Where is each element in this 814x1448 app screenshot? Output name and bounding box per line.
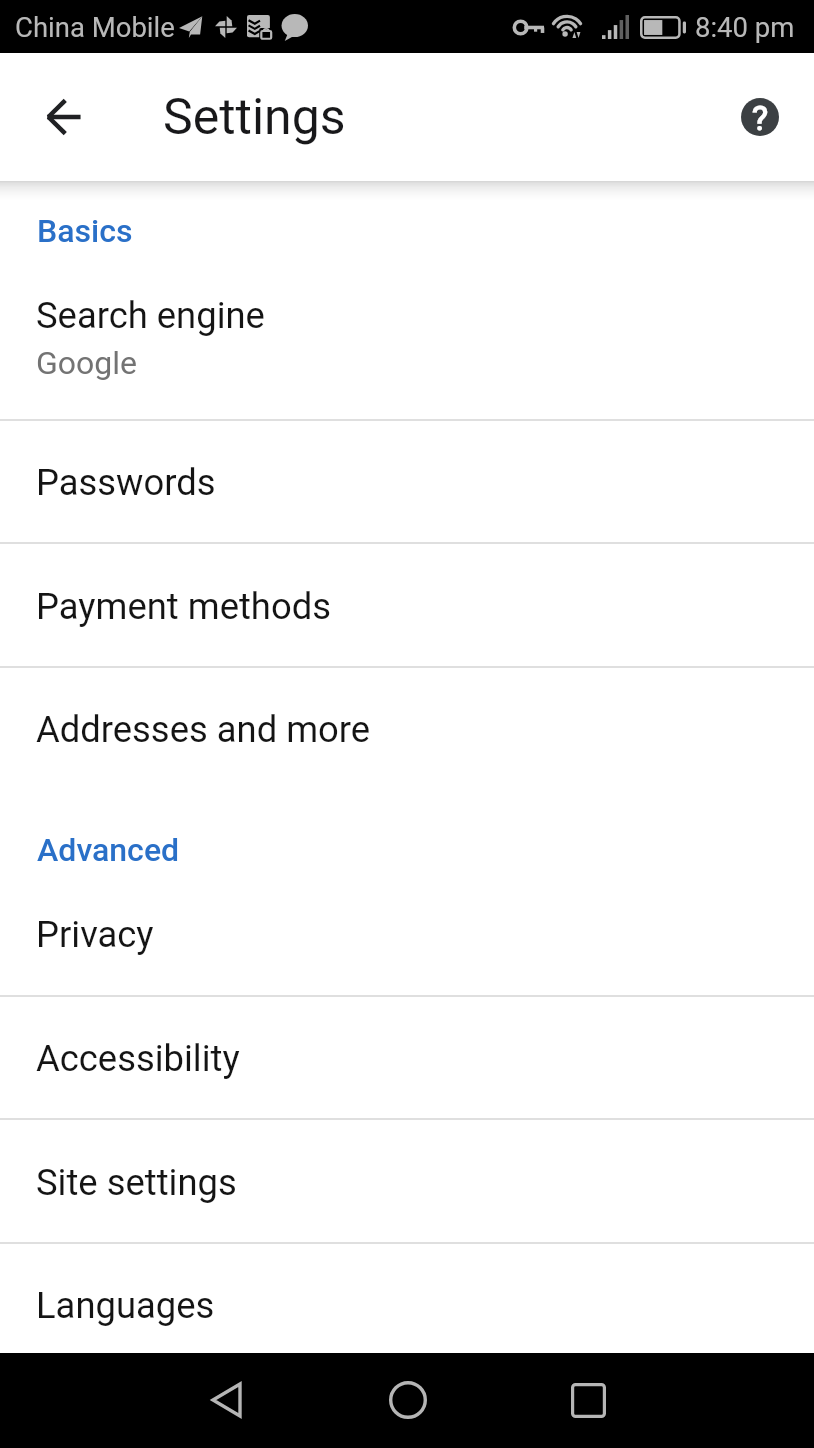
button[interactable]: Privacy — [0, 873, 814, 996]
staticText: Google — [36, 344, 138, 382]
staticText: Basics — [37, 212, 133, 250]
staticText: China Mobile — [15, 11, 175, 43]
button[interactable]: Passwords — [0, 420, 814, 543]
button[interactable]: Languages — [0, 1243, 814, 1353]
staticText: Settings — [163, 88, 346, 147]
staticText: Payment methods — [36, 585, 331, 628]
staticText: Site settings — [36, 1161, 237, 1204]
button[interactable]: Site settings — [0, 1119, 814, 1243]
button[interactable]: Accessibility — [0, 996, 814, 1119]
staticText: Advanced — [37, 831, 180, 869]
button[interactable]: Back — [190, 1364, 262, 1436]
staticText: ? — [752, 98, 769, 136]
staticText: Accessibility — [36, 1037, 240, 1080]
button[interactable]: Search engine — [0, 254, 814, 420]
button[interactable]: Payment methods — [0, 543, 814, 667]
staticText: Search engine — [36, 294, 265, 337]
button[interactable]: Addresses and more — [0, 667, 814, 790]
button[interactable]: Home — [372, 1364, 444, 1436]
staticText: Addresses and more — [36, 708, 371, 751]
button[interactable]: Back — [22, 76, 104, 158]
button[interactable]: Help — [724, 81, 796, 153]
staticText: Privacy — [36, 913, 154, 956]
staticText: Passwords — [36, 461, 216, 504]
staticText: Languages — [36, 1284, 215, 1327]
button[interactable]: Recents — [552, 1364, 624, 1436]
staticText: 8:40 pm — [695, 11, 795, 43]
